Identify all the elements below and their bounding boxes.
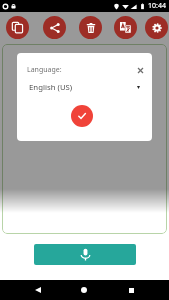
button[interactable]: Record: [34, 244, 136, 265]
button[interactable]: Settings: [145, 16, 168, 39]
button[interactable]: Recents: [122, 280, 140, 300]
staticText: English (US): [29, 82, 73, 93]
staticText: 10:44: [148, 1, 166, 11]
button[interactable]: Translate: [114, 16, 137, 39]
staticText: Language:: [27, 65, 62, 75]
button[interactable]: Confirm: [71, 105, 93, 127]
button[interactable]: Home: [75, 280, 93, 300]
button[interactable]: Back: [29, 280, 47, 300]
button[interactable]: Share: [43, 16, 66, 39]
button[interactable]: Delete: [79, 16, 102, 39]
button[interactable]: Close: [133, 63, 147, 77]
button[interactable]: Copy: [6, 16, 29, 39]
